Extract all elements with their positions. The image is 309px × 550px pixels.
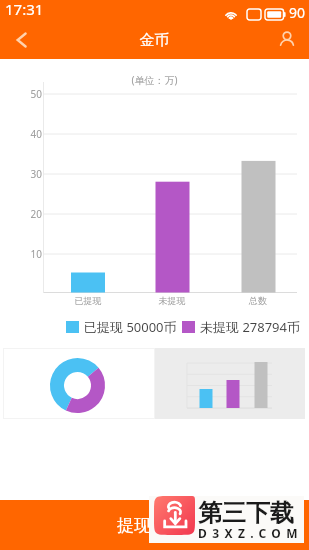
staticText: 未提现 278794币: [200, 318, 300, 336]
button[interactable]: Donut chart: [3, 348, 155, 419]
button[interactable]: 提现: [0, 500, 309, 550]
staticText: D3XZ.COM: [198, 525, 303, 541]
staticText: 已提现: [68, 295, 108, 306]
staticText: 提现: [117, 515, 151, 536]
staticText: 10: [26, 247, 42, 261]
staticText: 50: [26, 87, 42, 101]
staticText: 17:31: [5, 0, 44, 19]
staticText: 90: [289, 3, 306, 22]
staticText: 20: [26, 207, 42, 221]
staticText: 已提现 50000币: [84, 318, 177, 336]
staticText: 第三下载: [198, 498, 294, 528]
staticText: 未提现: [152, 295, 192, 306]
staticText: 总数: [238, 295, 278, 306]
button[interactable]: Back: [4, 23, 40, 57]
staticText: 30: [26, 167, 42, 181]
button[interactable]: Bar chart: [155, 348, 305, 419]
staticText: 40: [26, 127, 42, 141]
staticText: 金币: [0, 31, 309, 50]
staticText: (单位：万): [0, 73, 309, 87]
button[interactable]: Profile: [269, 23, 305, 57]
